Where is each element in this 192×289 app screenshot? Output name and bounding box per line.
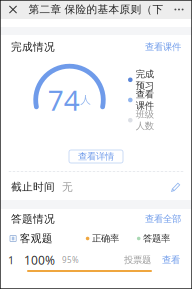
staticText: 1: [8, 253, 14, 267]
staticText: 人: [80, 93, 91, 106]
staticText: 查看课件: [145, 41, 181, 53]
staticText: 截止时间: [11, 180, 55, 193]
staticText: 查看: [162, 254, 180, 266]
staticText: 无: [62, 180, 73, 193]
staticText: 完成情况: [11, 40, 55, 53]
staticText: 班级人数: [136, 109, 154, 132]
staticText: 74: [48, 81, 80, 119]
staticText: 完成预习: [136, 68, 154, 91]
button[interactable]: 查看课件: [145, 41, 181, 53]
button[interactable]: 查看全部: [145, 213, 181, 225]
button[interactable]: More: [166, 0, 192, 19]
button[interactable]: 查看详情: [69, 150, 123, 163]
staticText: 正确率: [92, 233, 119, 244]
button[interactable]: Edit: [171, 181, 181, 192]
staticText: 投票题: [124, 254, 151, 266]
staticText: 第二章 保险的基本原则（下: [28, 3, 163, 16]
staticText: 查看全部: [145, 213, 181, 225]
staticText: 查看课件: [136, 88, 154, 111]
button[interactable]: 查看: [162, 254, 180, 266]
staticText: 查看详情: [78, 151, 114, 162]
button[interactable]: Close: [0, 0, 26, 19]
staticText: 答题率: [143, 233, 170, 244]
staticText: 客观题: [20, 232, 53, 245]
staticText: 100%: [24, 252, 55, 268]
staticText: 95%: [62, 255, 79, 265]
staticText: 答题情况: [11, 212, 55, 225]
